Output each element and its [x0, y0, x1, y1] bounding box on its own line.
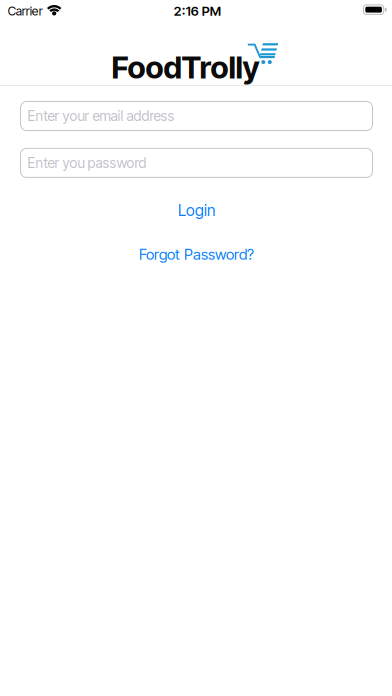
staticText: Login [178, 201, 215, 220]
staticText: Enter you password [27, 154, 146, 171]
staticText: Enter you password [20, 148, 233, 178]
button[interactable]: Forgot Password? [139, 245, 254, 263]
staticText: FoodTrolly [111, 48, 259, 86]
staticText: Carrier [8, 4, 43, 18]
button[interactable]: Login [178, 201, 215, 220]
staticText: 2:16 PM [174, 3, 221, 19]
staticText: Enter your email address [20, 101, 288, 131]
textField[interactable]: Enter your email address [20, 101, 372, 131]
staticText: Enter your email address [27, 108, 174, 124]
staticText: Forgot Password? [139, 245, 254, 263]
textField[interactable]: Enter you password [20, 148, 372, 178]
